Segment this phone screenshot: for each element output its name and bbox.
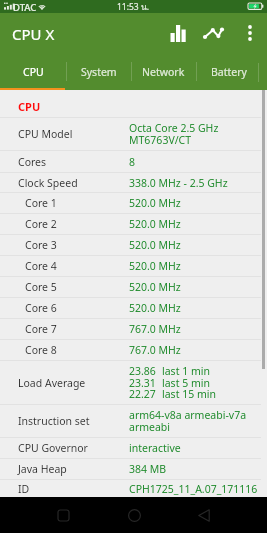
button[interactable]: Java Heap <box>0 459 267 479</box>
staticText: Java Heap <box>18 462 129 476</box>
staticText: Battery <box>211 65 247 79</box>
staticText: 520.0 MHz <box>129 196 181 210</box>
staticText: Clock Speed <box>18 176 129 190</box>
staticText: DTAC <box>13 1 37 14</box>
staticText: CPU <box>18 99 41 114</box>
button[interactable]: Core 2 <box>0 214 267 234</box>
button[interactable]: Instruction set <box>0 405 267 437</box>
staticText: ID <box>18 482 129 496</box>
staticText: 520.0 MHz <box>129 238 181 252</box>
staticText: Core 3 <box>25 238 129 252</box>
staticText: Core 1 <box>25 196 129 210</box>
button[interactable]: CPU Governor <box>0 438 267 458</box>
staticText: System <box>81 65 117 79</box>
staticText: CPU Governor <box>18 441 129 455</box>
button[interactable]: Cores <box>0 151 267 172</box>
staticText: 520.0 MHz <box>129 217 181 231</box>
staticText: 520.0 MHz <box>129 259 181 273</box>
staticText: Network <box>142 65 185 79</box>
button[interactable]: Line chart <box>201 21 225 45</box>
staticText: interactive <box>129 441 181 455</box>
button[interactable]: CPU <box>0 55 66 88</box>
button[interactable]: Recent apps <box>45 497 81 533</box>
staticText: Instruction set <box>18 414 129 428</box>
staticText: 23.86 23.31 22.27 <box>129 364 156 401</box>
button[interactable]: Core 4 <box>0 256 267 276</box>
staticText: CPH1725_11_A.07_171116 <box>129 482 258 496</box>
staticText: Load Average <box>18 376 129 390</box>
staticText: Cores <box>18 155 129 169</box>
button[interactable]: ID <box>0 480 267 497</box>
button[interactable]: System <box>66 55 131 88</box>
button[interactable]: Core 8 <box>0 340 267 360</box>
button[interactable]: Core 1 <box>0 193 267 213</box>
staticText: CPU <box>23 65 44 79</box>
staticText: 767.0 MHz <box>129 343 181 357</box>
staticText: 384 MB <box>129 462 167 476</box>
button[interactable]: Network <box>131 55 196 88</box>
staticText: 338.0 MHz - 2.5 GHz <box>129 176 228 190</box>
button[interactable]: Load Average <box>0 361 267 404</box>
staticText: Core 2 <box>25 217 129 231</box>
staticText: Core 8 <box>25 343 129 357</box>
staticText: CPU Model <box>18 127 129 141</box>
staticText: 11:53 น. <box>117 0 150 13</box>
button[interactable]: CPU Model <box>0 118 267 150</box>
staticText: Core 6 <box>25 301 129 315</box>
button[interactable]: Home <box>116 497 152 533</box>
staticText: 8 <box>129 155 136 169</box>
staticText: last 1 min last 5 min last 15 min <box>162 364 216 401</box>
staticText: arm64-v8a armeabi-v7a armeabi <box>129 408 247 434</box>
button[interactable]: Clock Speed <box>0 173 267 192</box>
button[interactable]: Bar chart <box>166 21 190 45</box>
staticText: Core 4 <box>25 259 129 273</box>
button[interactable]: More options <box>239 22 261 44</box>
staticText: CPU X <box>12 24 55 44</box>
staticText: Core 7 <box>25 322 129 336</box>
staticText: 520.0 MHz <box>129 280 181 294</box>
staticText: 520.0 MHz <box>129 301 181 315</box>
staticText: Core 5 <box>25 280 129 294</box>
staticText: Octa Core 2.5 GHz MT6763V/CT <box>129 121 219 147</box>
staticText: 767.0 MHz <box>129 322 181 336</box>
button[interactable]: Back <box>186 497 222 533</box>
button[interactable]: Core 3 <box>0 235 267 255</box>
button[interactable]: Battery <box>196 55 261 88</box>
button[interactable]: Core 5 <box>0 277 267 297</box>
button[interactable]: Core 7 <box>0 319 267 339</box>
button[interactable]: Core 6 <box>0 298 267 318</box>
